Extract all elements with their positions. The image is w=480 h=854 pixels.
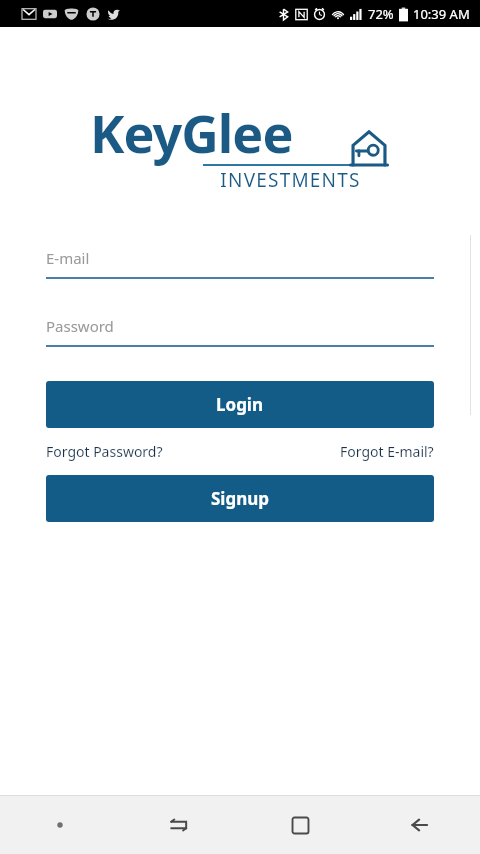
button[interactable]: Forgot Password?: [46, 439, 163, 464]
button[interactable]: Back: [360, 796, 480, 854]
button[interactable]: Recent apps: [240, 796, 360, 854]
button[interactable]: Password: [46, 316, 434, 347]
button[interactable]: Menu: [0, 796, 120, 854]
staticText: Signup: [211, 487, 270, 510]
staticText: E-mail: [46, 248, 90, 268]
staticText: 72%: [368, 5, 394, 23]
button[interactable]: Switch apps: [120, 796, 240, 854]
staticText: KeyGlee: [90, 97, 293, 168]
staticText: 10:39 AM: [413, 5, 470, 23]
button[interactable]: E-mail: [46, 248, 434, 279]
staticText: Password: [46, 316, 114, 336]
staticText: INVESTMENTS: [203, 167, 378, 193]
button[interactable]: Login: [46, 381, 434, 428]
button[interactable]: Forgot E-mail?: [340, 439, 434, 464]
staticText: Login: [216, 393, 264, 416]
button[interactable]: Signup: [46, 475, 434, 522]
